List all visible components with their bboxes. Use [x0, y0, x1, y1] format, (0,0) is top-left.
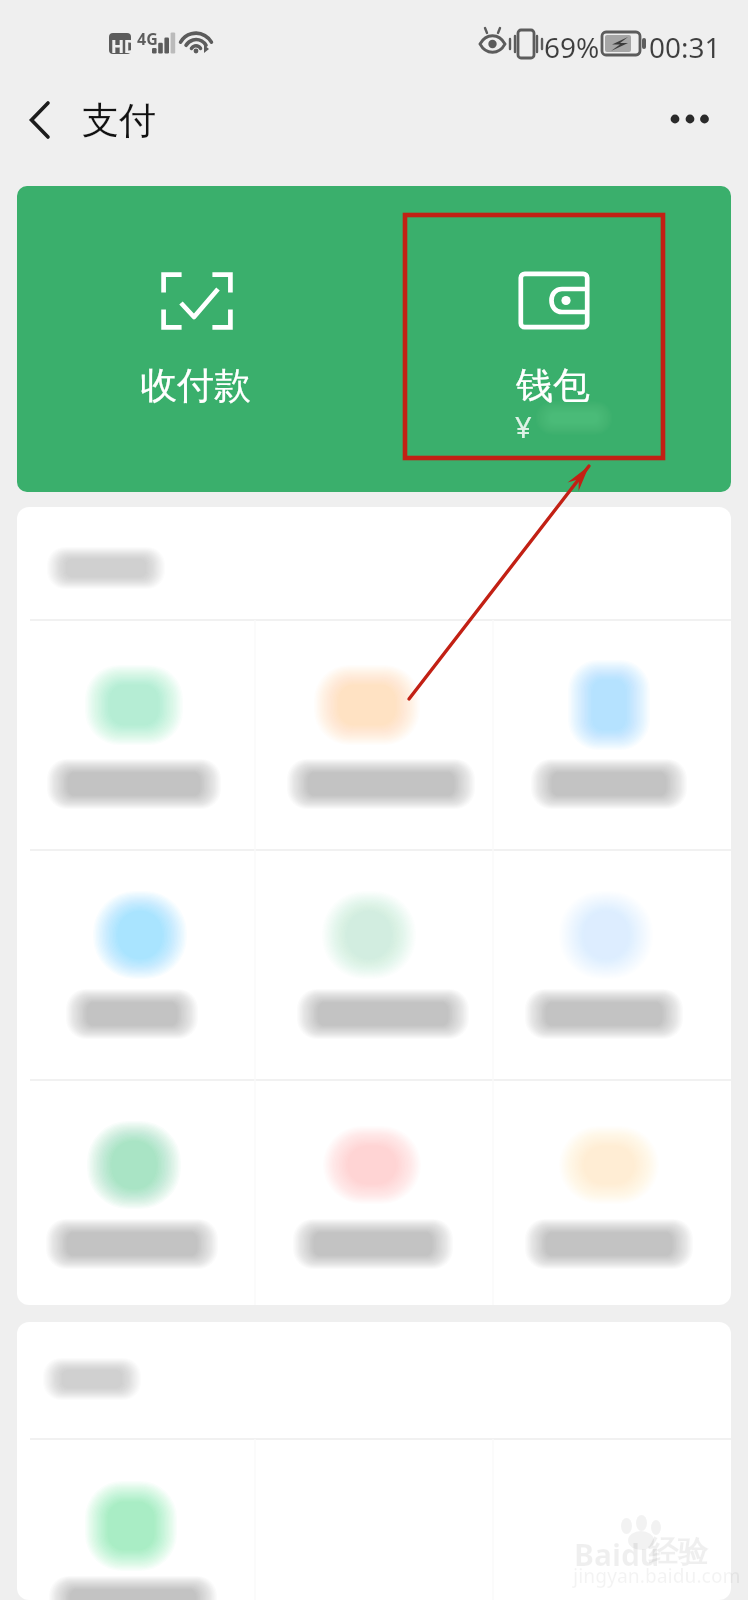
staticText: 69% — [544, 28, 600, 66]
staticText: 00:31 — [649, 28, 721, 66]
button[interactable] — [17, 1439, 255, 1600]
button[interactable] — [17, 850, 255, 1080]
staticText: ¥ — [515, 407, 532, 446]
staticText: HD — [111, 35, 137, 58]
button[interactable]: Back — [10, 90, 70, 150]
button[interactable] — [255, 1080, 493, 1310]
staticText: jingyan.baidu.com — [573, 1563, 741, 1589]
staticText: 收付款 — [140, 362, 251, 409]
button[interactable] — [493, 620, 731, 850]
staticText: 经验 — [648, 1533, 708, 1571]
staticText: 支付 — [82, 97, 156, 144]
button[interactable] — [255, 620, 493, 850]
button[interactable] — [17, 1080, 255, 1310]
button[interactable]: More options — [660, 89, 720, 149]
staticText: Baidu — [574, 1534, 660, 1575]
staticText: 钱包 — [516, 362, 590, 409]
button[interactable] — [255, 850, 493, 1080]
button[interactable] — [493, 1080, 731, 1310]
staticText: 4G — [137, 28, 158, 50]
button[interactable]: 收付款 — [17, 186, 374, 492]
button[interactable] — [17, 620, 255, 850]
button[interactable] — [493, 850, 731, 1080]
button[interactable]: 钱包 — [374, 186, 731, 492]
